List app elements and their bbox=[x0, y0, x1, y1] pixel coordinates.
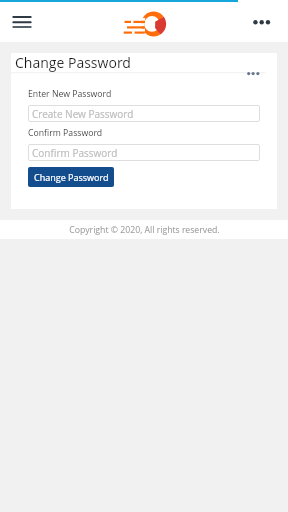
staticText: Copyright © 2020, All rights reserved. bbox=[69, 224, 220, 236]
staticText: Enter New Password bbox=[28, 88, 112, 100]
staticText: Create New Password bbox=[32, 107, 134, 121]
button[interactable]: Confirm Password bbox=[28, 144, 260, 161]
button[interactable]: Create New Password bbox=[28, 105, 260, 122]
staticText: Confirm Password bbox=[32, 146, 118, 160]
staticText: Change Password bbox=[34, 171, 109, 183]
button[interactable]: Change Password bbox=[28, 167, 114, 187]
staticText: Confirm Password bbox=[28, 127, 103, 139]
button[interactable]: Menu bbox=[8, 7, 36, 35]
button[interactable]: More options bbox=[248, 8, 276, 36]
staticText: Change Password bbox=[15, 53, 131, 72]
